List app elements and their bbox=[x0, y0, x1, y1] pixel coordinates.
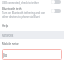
staticText: Jio bbox=[3, 51, 7, 58]
staticText: other devices to phone via Bluet bbox=[2, 14, 40, 18]
staticText: Mobile netw bbox=[2, 41, 19, 46]
button[interactable]: Mobile netw bbox=[0, 40, 64, 46]
button[interactable]: USB connected, check to tether bbox=[0, 0, 64, 5]
button[interactable]: Jio bbox=[2, 49, 62, 60]
button[interactable]: USB tethering bbox=[51, 0, 61, 4]
staticText: USB connected, check to tether bbox=[2, 0, 51, 4]
button[interactable]: Bluetooth teth bbox=[0, 6, 64, 20]
button[interactable]: Help bbox=[0, 21, 64, 28]
staticText: Bluetooth teth bbox=[2, 6, 22, 12]
button[interactable]: Bluetooth tethering bbox=[51, 9, 61, 13]
staticText: NETWORK bbox=[2, 35, 14, 39]
staticText: Help bbox=[2, 23, 9, 28]
staticText: Turn on Bluetooth tethering and con bbox=[2, 10, 45, 14]
